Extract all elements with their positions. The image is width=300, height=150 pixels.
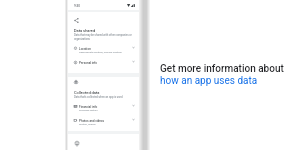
staticText: Approximate location, Precise location — [79, 51, 122, 54]
staticText: Collected data — [74, 90, 100, 95]
staticText: Get more information about — [160, 63, 284, 75]
staticText: 9:30 — [74, 4, 80, 8]
staticText: Financial info — [79, 105, 98, 109]
staticText: Purchase history — [79, 109, 98, 112]
staticText: Data shared — [74, 28, 96, 33]
staticText: Photos and videos — [79, 119, 105, 123]
staticText: Photos, Videos — [79, 123, 96, 126]
other: Share — [74, 18, 79, 23]
staticText: Location — [79, 47, 91, 51]
staticText: Data that's collected when an app is use… — [74, 96, 123, 99]
button[interactable]: Financial info — [68, 103, 139, 117]
staticText: Personal info — [79, 61, 98, 65]
staticText: Data that may be shared with other compa… — [74, 34, 132, 41]
staticText: how an app uses data — [160, 75, 258, 87]
button[interactable]: Photos and videos — [68, 117, 139, 131]
button[interactable]: Personal info — [68, 59, 139, 69]
button[interactable]: Location — [68, 45, 139, 59]
button[interactable]: how an app uses data — [160, 75, 258, 87]
